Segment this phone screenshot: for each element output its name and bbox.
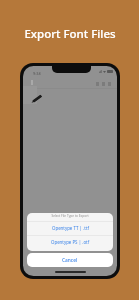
button[interactable]: Tool: [106, 81, 113, 87]
button[interactable]: Pen tool: [23, 86, 37, 104]
staticText: 9:34: [33, 71, 41, 76]
staticText: Export Font Files: [24, 26, 116, 42]
button[interactable]: Opentype PS | .otf: [27, 236, 113, 251]
staticText: Opentype PS | .otf: [51, 239, 90, 245]
button[interactable]: Tool: [100, 81, 106, 87]
staticText: Opentype TT | .ttf: [52, 225, 89, 231]
button[interactable]: Cancel: [27, 253, 113, 267]
staticText: Select File Type to Export: [51, 214, 89, 218]
button[interactable]: Opentype TT | .ttf: [27, 222, 113, 235]
staticText: Cancel: [62, 257, 78, 264]
button[interactable]: Menu: [28, 79, 35, 86]
button[interactable]: Tool: [94, 81, 100, 87]
